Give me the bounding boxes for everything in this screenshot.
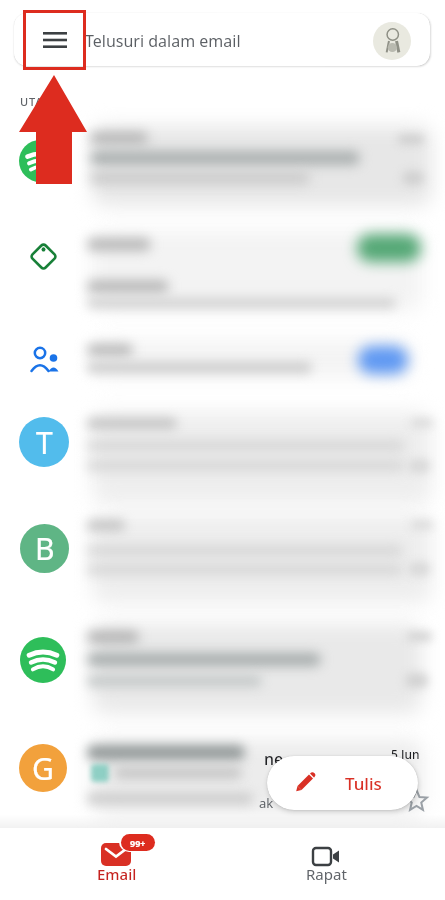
button[interactable] bbox=[14, 13, 430, 66]
button[interactable] bbox=[43, 32, 67, 48]
staticText: B bbox=[35, 528, 55, 569]
staticText: 99+ bbox=[130, 837, 146, 849]
staticText: Email bbox=[97, 864, 137, 884]
staticText: T bbox=[36, 422, 53, 463]
button[interactable]: B bbox=[20, 524, 69, 573]
button[interactable] bbox=[270, 830, 390, 892]
button[interactable] bbox=[373, 22, 411, 60]
staticText: UTAMA bbox=[20, 94, 63, 109]
button[interactable]: Tulis bbox=[267, 756, 418, 810]
staticText: ne bbox=[264, 748, 284, 770]
staticText: ak bbox=[259, 794, 274, 812]
button[interactable] bbox=[60, 830, 180, 892]
staticText: G bbox=[32, 748, 54, 789]
staticText: Telusuri dalam email bbox=[85, 30, 241, 52]
staticText: Tulis bbox=[345, 772, 382, 795]
button[interactable]: G bbox=[19, 744, 67, 792]
button[interactable]: T bbox=[19, 417, 69, 467]
staticText: 5 Jun bbox=[391, 746, 420, 762]
staticText: Rapat bbox=[306, 864, 347, 884]
